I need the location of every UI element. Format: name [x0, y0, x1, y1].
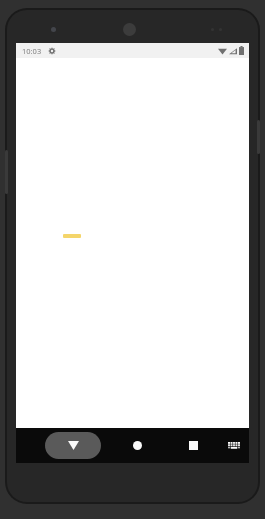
staticText: 10:03	[22, 46, 42, 56]
button[interactable]: Switch input method	[220, 432, 248, 459]
button[interactable]: Hide keyboard	[45, 432, 101, 459]
button[interactable]: Home	[120, 432, 154, 459]
button[interactable]: Recent apps	[176, 432, 210, 459]
